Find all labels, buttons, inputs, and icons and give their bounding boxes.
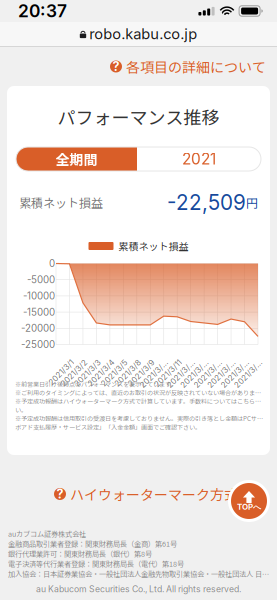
staticText: 2021/3/1: [40, 355, 72, 366]
staticText: 2021/3/16: [185, 355, 221, 366]
staticText: auカブコム証券株式会社: [8, 527, 86, 539]
staticText: い。: [15, 405, 27, 415]
staticText: 2021/3/17: [198, 355, 234, 366]
staticText: 2021/3/19: [225, 355, 261, 366]
staticText: 2021/3/9: [119, 355, 153, 366]
staticText: ボアド支払履歴・サービス設定」「入金金額」画面でご確認下さい。: [15, 422, 201, 432]
staticText: ※ご利用のタイミングによっては、直近のお取引の状況が反映されていない場合がありま…: [15, 387, 264, 398]
staticText: -20000: [21, 321, 55, 335]
staticText: 2021: [182, 148, 216, 170]
staticText: パフォーマンス推移: [57, 101, 219, 131]
staticText: 2021/3/15: [171, 355, 207, 366]
staticText: -15000: [23, 305, 55, 319]
button[interactable]: 2021: [137, 147, 261, 171]
staticText: 2021/3/4: [79, 355, 113, 366]
staticText: -10000: [23, 289, 55, 303]
staticText: robo.kabu.co.jp: [89, 24, 197, 44]
staticText: ?: [112, 58, 119, 75]
staticText: 2021/3/12: [158, 355, 194, 366]
staticText: 銀行代理業許可：関東財務局長（銀代）第8号: [8, 547, 152, 559]
button[interactable]: ?: [0, 480, 277, 508]
staticText: ※前営業日引け後時点のパフォーマンスを表示しています。: [15, 379, 177, 389]
staticText: 20:37: [18, 0, 67, 23]
staticText: ハイウォーターマーク方式とは: [70, 482, 266, 506]
staticText: 2021/3/11: [145, 355, 180, 366]
staticText: 2021/3/8: [106, 355, 140, 366]
staticText: 円: [246, 192, 258, 212]
staticText: ※予定成功報酬は信用取引の受渡日を考慮しておりません。実際の引き落とし金額はPC…: [15, 413, 264, 423]
button[interactable]: 全期間: [16, 147, 137, 171]
staticText: au Kabucom Securities Co., Ltd. All righ…: [36, 583, 241, 595]
staticText: -5000: [27, 273, 55, 286]
staticText: 電子決済等代行業者登録：関東財務局長（電代）第18号: [8, 557, 184, 569]
staticText: 金融商品取引業者登録：関東財務局長（金商）第61号: [8, 537, 177, 549]
staticText: ※予定成功報酬はハイウォーターマーク方式で計算しています。手数料についてはこちら…: [15, 396, 264, 406]
staticText: 2021/3/2: [52, 355, 86, 366]
staticText: 2021/3/10: [131, 355, 167, 366]
staticText: 累積ネット損益: [118, 238, 188, 254]
staticText: 各項目の詳細について: [126, 55, 266, 78]
button[interactable]: ?: [0, 47, 277, 86]
staticText: 2021/3/18: [211, 355, 247, 366]
button[interactable]: Back to top: [228, 480, 270, 522]
staticText: -22,509: [167, 188, 246, 217]
staticText: 2021/3/5: [92, 355, 126, 366]
staticText: 累積ネット損益: [19, 192, 103, 212]
staticText: 0: [49, 257, 55, 270]
staticText: -25000: [21, 338, 55, 351]
staticText: TOPへ: [237, 501, 261, 513]
staticText: 加入協会：日本証券業協会・一般社団法人金融先物取引業協会・一般社団法人 日本投資…: [8, 567, 269, 579]
staticText: ?: [56, 485, 63, 503]
staticText: 全期間: [55, 147, 97, 171]
staticText: 2021/3/3: [65, 355, 99, 366]
